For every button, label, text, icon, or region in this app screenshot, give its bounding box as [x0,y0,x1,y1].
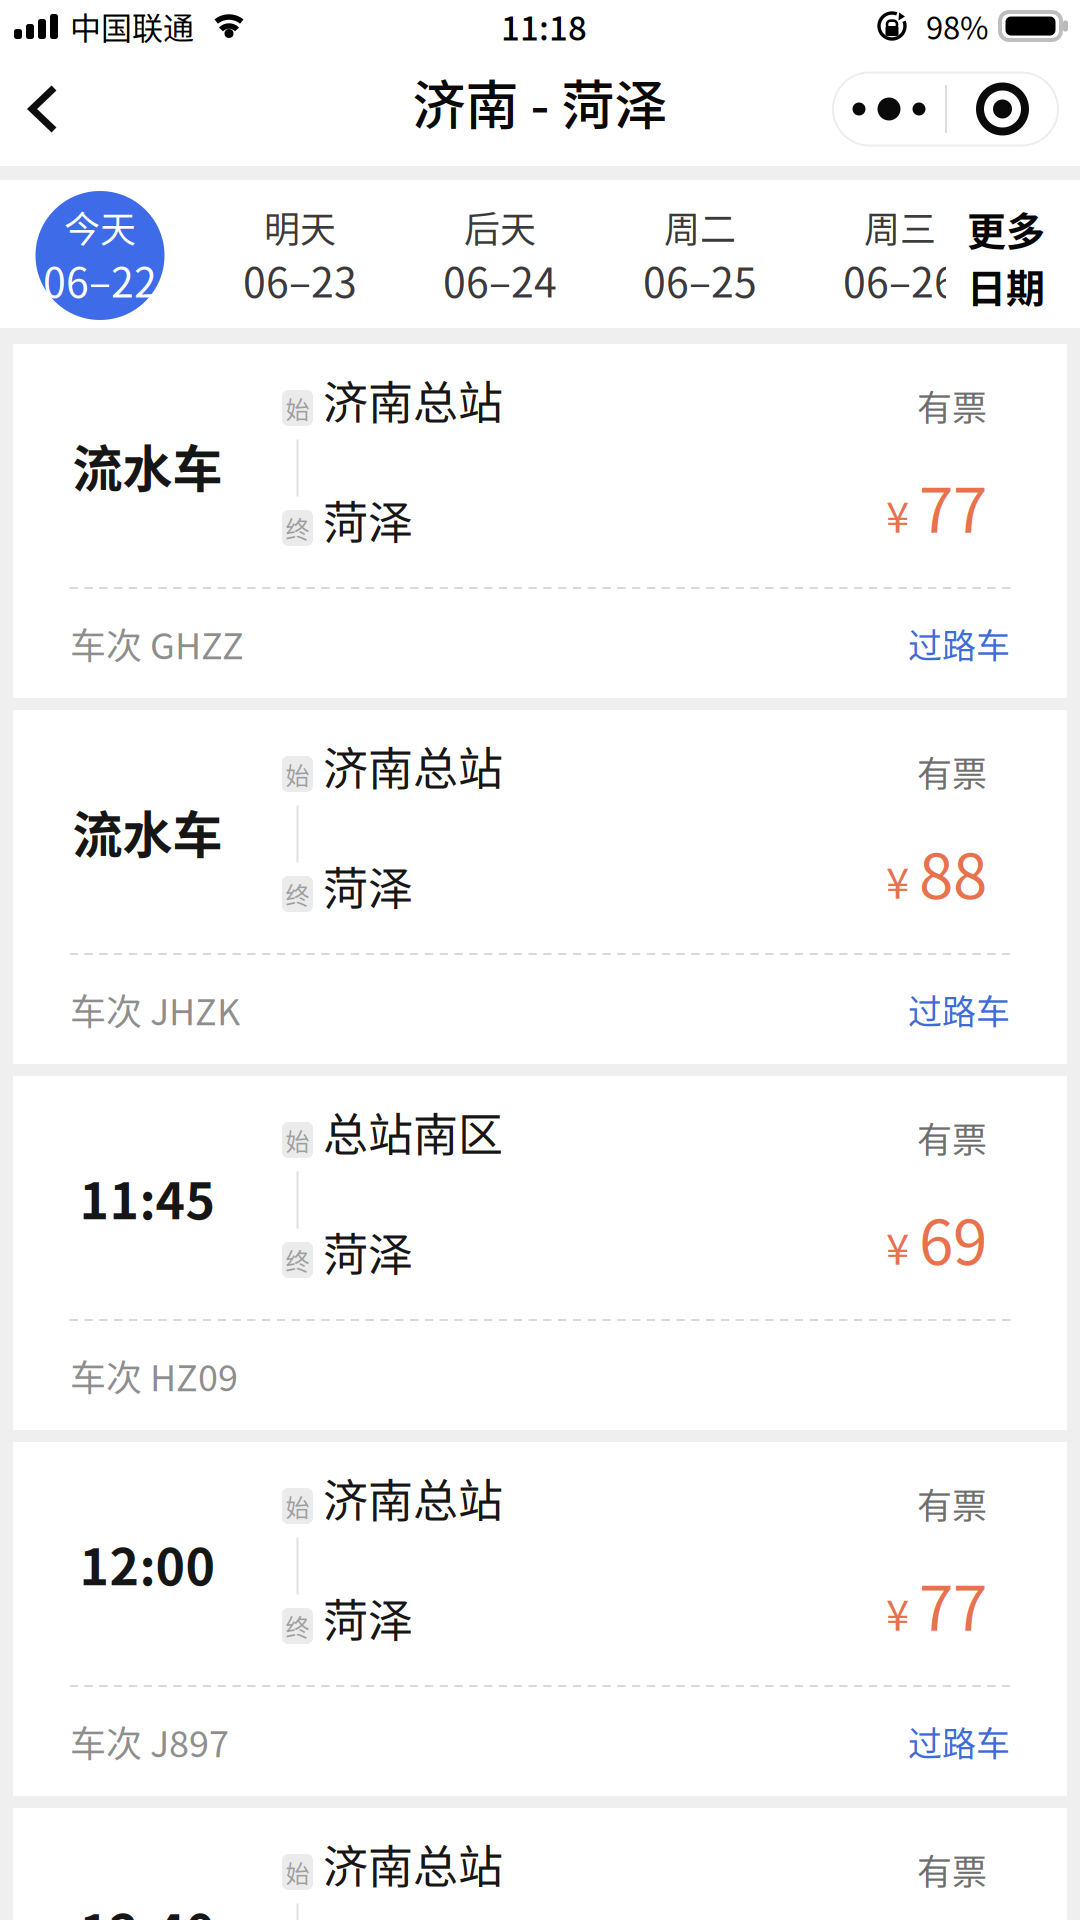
staticText: 过路车 [908,985,1010,1034]
staticText: 车次 J897 [70,1715,229,1767]
staticText: 11:18 [501,2,587,50]
staticText: 日期 [967,257,1045,314]
staticText: 过路车 [908,619,1010,668]
button[interactable]: 返回 [0,52,86,166]
staticText: 有票 [917,1478,987,1529]
staticText: ¥ [886,850,909,911]
button[interactable]: 后天 [400,180,600,328]
button[interactable]: 12:40 [13,1808,1067,1920]
staticText: 69 [919,1193,987,1282]
staticText: 后天 [464,201,536,253]
staticText: 始 [285,391,309,425]
staticText: 菏泽 [323,487,413,553]
staticText: 11:45 [79,1161,215,1234]
staticText: 菏泽 [323,853,413,919]
staticText: ¥ [886,484,909,545]
staticText: 流水车 [72,795,222,868]
staticText: 菏泽 [323,1219,413,1285]
button[interactable]: 11:45 [13,1076,1067,1430]
staticText: 济南总站 [323,367,503,433]
staticText: 济南 - 菏泽 [412,64,667,140]
button[interactable]: 流水车 [13,344,1067,698]
staticText: 06–25 [643,250,757,309]
staticText: 06–26 [843,250,957,309]
staticText: 88 [919,827,987,916]
staticText: 总站南区 [323,1099,503,1165]
staticText: 终 [285,877,309,911]
staticText: 更多 [967,200,1045,257]
staticText: 今天 [64,201,136,253]
staticText: 过路车 [908,1717,1010,1766]
staticText: 有票 [917,380,987,431]
staticText: 始 [285,757,309,791]
staticText: 终 [285,1243,309,1277]
staticText: 12:00 [79,1527,215,1600]
button[interactable]: 流水车 [13,710,1067,1064]
staticText: ¥ [886,1582,909,1643]
staticText: 流水车 [72,429,222,502]
staticText: 车次 GHZZ [70,617,244,669]
button[interactable]: 周三 [800,180,1000,328]
staticText: 06–23 [243,250,357,309]
staticText: 周三 [864,201,936,253]
staticText: 98% [926,4,989,48]
staticText: 终 [285,511,309,545]
staticText: 有票 [917,1844,987,1895]
staticText: 车次 HZ09 [70,1349,238,1401]
staticText: 济南总站 [323,733,503,799]
staticText: 12:40 [79,1893,215,1920]
button[interactable]: 更多 [946,180,1066,328]
staticText: 终 [285,1609,309,1643]
staticText: 始 [285,1123,309,1157]
staticText: 始 [285,1855,309,1889]
staticText: 济南总站 [323,1465,503,1531]
button[interactable]: 更多功能 [833,57,1080,160]
staticText: 济南总站 [323,1831,503,1897]
staticText: 车次 JHZK [70,983,240,1035]
staticText: ¥ [886,1216,909,1277]
staticText: 06–24 [443,250,557,309]
staticText: 中国联通 [70,4,194,48]
button[interactable]: 周二 [600,180,800,328]
staticText: 菏泽 [323,1585,413,1651]
staticText: 77 [919,1559,987,1648]
staticText: 周二 [664,201,736,253]
staticText: 77 [919,461,987,550]
button[interactable]: 12:00 [13,1442,1067,1796]
staticText: 明天 [264,201,336,253]
staticText: 有票 [917,746,987,797]
staticText: 有票 [917,1112,987,1163]
staticText: 06–22 [43,250,157,309]
button[interactable]: 明天 [200,180,400,328]
button[interactable]: 今天 [0,180,200,328]
staticText: 始 [285,1489,309,1523]
